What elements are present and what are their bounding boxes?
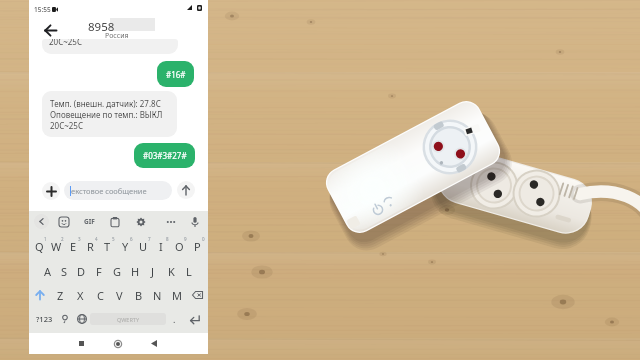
button[interactable]: H [126,258,144,284]
staticText: QWERTY [117,316,140,323]
button[interactable]: ?123 [32,306,57,332]
button[interactable]: Send [177,181,195,199]
button[interactable]: J [144,258,162,284]
staticText: ?123 [36,314,53,324]
button[interactable]: 20C~25C [42,39,178,54]
button[interactable]: X [70,282,90,308]
button[interactable]: E [65,233,82,259]
staticText: G [113,264,122,279]
button[interactable]: Back [145,335,162,352]
button[interactable]: Collapse toolbar [34,214,49,229]
button[interactable]: R [82,233,99,259]
button[interactable]: Back [41,21,59,39]
button[interactable]: Voice input [188,215,201,228]
button[interactable]: B [129,282,148,308]
staticText: F [96,264,102,279]
staticText: 15:55 [34,5,51,14]
staticText: 1 [44,236,47,242]
staticText: D [77,264,86,279]
button[interactable]: . [166,306,183,332]
button[interactable]: Z [50,282,70,308]
button[interactable]: Change language [73,306,90,332]
button[interactable]: C [90,282,110,308]
staticText: Y [122,239,129,254]
staticText: GIF [84,217,95,226]
button[interactable]: #16# [157,61,194,87]
staticText: M [172,288,182,303]
staticText: 8958 [88,19,115,35]
button[interactable]: Темп. (внешн. датчик): 27.8C [42,91,177,137]
staticText: #16# [166,69,186,80]
staticText: Q [35,239,44,254]
button[interactable]: Y [116,233,134,259]
button[interactable]: Clipboard [108,215,121,228]
staticText: . [173,313,176,325]
staticText: L [186,264,192,279]
button[interactable]: GIF [83,215,96,228]
button[interactable]: P [188,233,206,259]
staticText: I [159,239,163,254]
staticText: #03#3#27# [143,150,187,161]
button[interactable]: екстовое сообщение [64,181,172,200]
staticText: A [44,264,52,279]
button[interactable]: T [99,233,116,259]
button[interactable]: A [39,258,56,284]
button[interactable]: V [110,282,129,308]
button[interactable]: N [148,282,167,308]
button[interactable]: S [56,258,73,284]
button[interactable]: Enter [183,306,205,332]
button[interactable]: K [162,258,180,284]
button[interactable]: G [108,258,126,284]
staticText: V [116,288,123,303]
staticText: S [61,264,68,279]
button[interactable]: More options [164,215,177,228]
button[interactable]: I [152,233,170,259]
button[interactable]: Settings [134,215,147,228]
staticText: 20C~25C [49,39,82,47]
staticText: C [97,288,104,303]
staticText: E [70,239,77,254]
button[interactable]: Add attachment [42,182,60,200]
staticText: Z [57,288,64,303]
staticText: 9 [184,236,187,242]
button[interactable]: #03#3#27# [134,143,195,168]
button[interactable]: Shift [29,282,50,308]
button[interactable]: Backspace [186,282,208,308]
button[interactable]: U [134,233,152,259]
button[interactable]: W [48,233,65,259]
button[interactable]: Emoji [57,306,73,332]
staticText: 7 [148,236,151,242]
staticText: 4 [95,236,98,242]
button[interactable]: Home [109,335,126,352]
staticText: W [51,239,62,254]
button[interactable]: L [180,258,198,284]
staticText: 8 [166,236,169,242]
staticText: X [77,288,84,303]
staticText: J [151,264,155,279]
staticText: K [168,264,175,279]
staticText: O [175,239,184,254]
staticText: T [104,239,111,254]
staticText: 2 [61,236,64,242]
staticText: U [139,239,148,254]
staticText: 5 [112,236,115,242]
staticText: екстовое сообщение [71,186,147,196]
button[interactable]: D [73,258,90,284]
staticText: Оповещение по темп.: ВЫКЛ [50,109,163,120]
staticText: 6 [130,236,133,242]
button[interactable]: Q [31,233,48,259]
staticText: P [194,239,201,254]
staticText: N [153,288,162,303]
button[interactable]: M [167,282,186,308]
button[interactable]: Recent apps [73,335,90,352]
button[interactable]: Stickers [57,215,70,228]
staticText: 20C~25C [50,120,83,131]
button[interactable]: F [90,258,108,284]
staticText: R [87,239,94,254]
button[interactable]: QWERTY [90,313,166,325]
button[interactable]: O [170,233,188,259]
staticText: B [135,288,143,303]
staticText: Темп. (внешн. датчик): 27.8C [50,98,161,109]
staticText: 0 [202,236,205,242]
staticText: H [131,264,140,279]
